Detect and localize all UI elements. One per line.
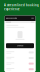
staticText: Make a booking: [6, 17, 17, 19]
staticText: experience: [4, 7, 20, 11]
button[interactable]: [4, 61, 35, 66]
button[interactable]: Continue: [6, 43, 34, 48]
button[interactable]: [4, 66, 35, 72]
button[interactable]: [4, 50, 35, 55]
button[interactable]: [4, 55, 35, 61]
staticText: A streamlined booking: [4, 3, 39, 7]
staticText: Continue: [16, 45, 23, 47]
